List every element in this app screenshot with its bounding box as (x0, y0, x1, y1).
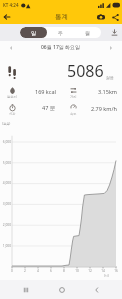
staticText: 5,000 (0, 161, 11, 165)
staticText: 12 (86, 269, 94, 273)
staticText: 169 kcal (35, 88, 56, 95)
staticText: 2.79 km/h (91, 105, 117, 112)
staticText: 칼로리 (7, 95, 17, 99)
staticText: 일 (31, 30, 36, 36)
staticText: 5086 (67, 60, 104, 82)
staticText: 4,000 (0, 181, 11, 185)
button[interactable]: 칼로리 (0, 84, 61, 96)
staticText: 47 분 (42, 104, 56, 112)
button[interactable]: 속도 (61, 101, 122, 113)
button[interactable]: Recents (16, 280, 35, 299)
staticText: 10 (73, 269, 81, 273)
staticText: 1,000 (0, 244, 11, 248)
button[interactable]: Back (87, 280, 106, 299)
button[interactable]: 주 (47, 27, 74, 38)
staticText: 16 (112, 269, 120, 273)
staticText: 6,000 (0, 140, 11, 144)
button[interactable]: 시간 (0, 101, 61, 113)
button[interactable]: 일 (20, 27, 47, 38)
button[interactable]: Previous day (4, 41, 18, 54)
button[interactable]: 거리 (61, 84, 122, 96)
staticText: 4 (34, 269, 42, 273)
staticText: 14 (99, 269, 107, 273)
button[interactable]: 월 (74, 27, 101, 38)
staticText: 거리 (70, 95, 77, 99)
staticText: KT 4:24 (3, 2, 19, 8)
button[interactable]: Next day (104, 41, 118, 54)
staticText: 2,000 (0, 223, 11, 227)
button[interactable]: Back (0, 10, 14, 24)
button[interactable]: Download (106, 24, 122, 41)
button[interactable]: Camera (94, 10, 108, 24)
staticText: (걸음) (2, 122, 11, 126)
staticText: 3.15km (98, 88, 117, 95)
button[interactable]: Share (108, 10, 122, 24)
staticText: 3,000 (0, 202, 11, 206)
staticText: 속도 (70, 112, 77, 116)
staticText: 06월 17일 화요일 (41, 44, 81, 51)
button[interactable]: Home (52, 280, 71, 299)
staticText: 0 (8, 269, 16, 273)
staticText: 월 (85, 30, 90, 36)
staticText: 6 (47, 269, 55, 273)
staticText: 주 (58, 30, 63, 36)
staticText: 시간 (9, 112, 16, 116)
staticText: 통계 (55, 13, 68, 21)
staticText: 2 (21, 269, 29, 273)
staticText: 걸음 (106, 75, 114, 80)
staticText: 8 (60, 269, 68, 273)
staticText: (시) (104, 274, 109, 278)
